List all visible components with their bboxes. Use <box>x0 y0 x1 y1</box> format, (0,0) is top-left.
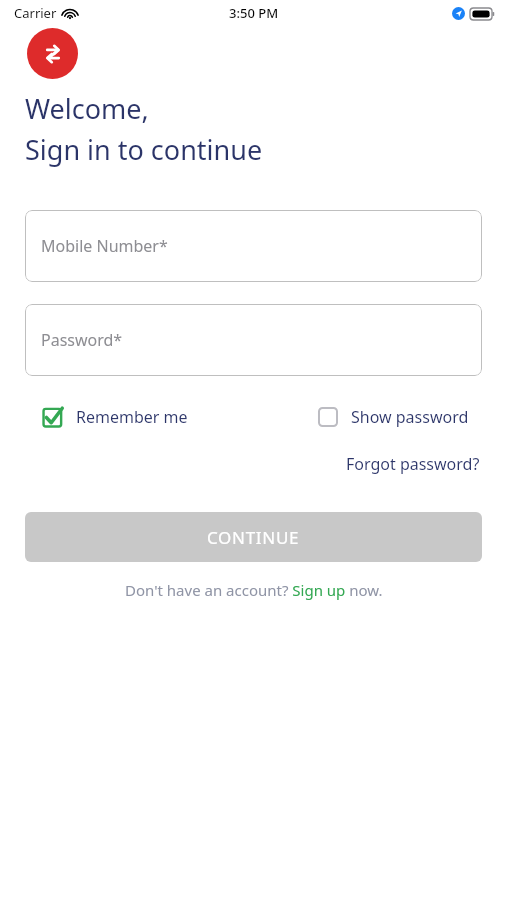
staticText: Forgot password? <box>346 453 480 475</box>
staticText: Mobile Number* <box>41 235 168 257</box>
staticText: Don't have an account? Sign up now. <box>125 580 383 600</box>
staticText: CONTINUE <box>207 526 300 549</box>
staticText: Password* <box>41 329 123 351</box>
button[interactable]: Password* <box>25 304 482 376</box>
staticText: Sign in to continue <box>25 131 263 168</box>
button[interactable]: Forgot password? <box>346 453 480 475</box>
button[interactable]: Mobile Number* <box>25 210 482 282</box>
staticText: Remember me <box>76 406 188 428</box>
staticText: Show password <box>351 406 469 428</box>
staticText: Carrier <box>14 4 57 22</box>
other: App logo <box>27 28 78 79</box>
button[interactable]: Show password <box>317 406 469 428</box>
staticText: Welcome, <box>25 90 149 127</box>
button[interactable]: CONTINUE <box>25 512 482 562</box>
staticText: 3:50 PM <box>229 4 279 22</box>
button[interactable]: Remember me <box>42 406 188 428</box>
button[interactable]: Don't have an account? Sign up now. <box>0 580 507 600</box>
